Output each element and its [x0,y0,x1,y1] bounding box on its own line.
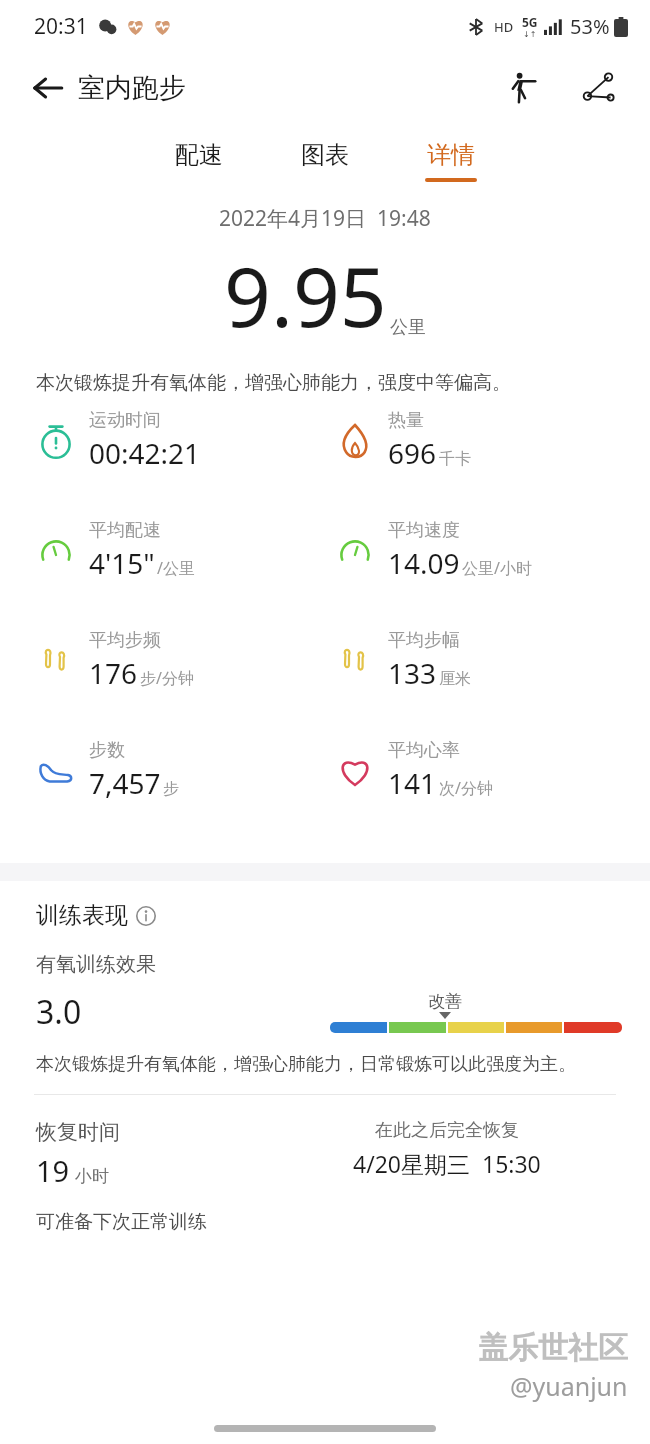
button[interactable]: 详情 [415,134,487,188]
staticText: 详情 [427,140,475,170]
staticText: ↓↑ [523,30,537,39]
staticText: 4/20星期三 15:30 [353,1148,541,1179]
button[interactable]: 图表 [289,134,361,188]
staticText: 133 [388,654,437,692]
button[interactable]: Share [572,61,626,115]
staticText: 20:31 [34,12,88,41]
staticText: 2022年4月19日 19:48 [219,204,431,233]
staticText: 3.0 [36,990,82,1034]
staticText: 次/分钟 [439,777,493,799]
staticText: 训练表现 [36,901,128,930]
staticText: 改善 [428,991,462,1012]
staticText: 公里/小时 [462,557,532,579]
staticText: 平均步幅 [388,629,460,652]
staticText: 公里 [390,316,426,339]
staticText: 141 [388,764,437,802]
staticText: 9.95 [224,239,387,351]
staticText: 本次锻炼提升有氧体能，增强心肺能力，日常锻炼可以此强度为主。 [36,1053,576,1076]
staticText: 小时 [75,1166,109,1187]
staticText: 平均配速 [89,519,161,542]
staticText: 00:42:21 [89,434,201,472]
staticText: 千卡 [439,449,471,469]
staticText: 有氧训练效果 [36,952,156,977]
button[interactable]: 平均速度 [333,519,650,582]
staticText: 步数 [89,739,125,762]
button[interactable]: 热量 [333,409,650,472]
staticText: 5G [522,14,538,30]
staticText: 平均速度 [388,519,460,542]
staticText: @yuanjun [510,1369,628,1403]
staticText: 盖乐世社区 [478,1329,628,1367]
staticText: 图表 [301,140,349,170]
staticText: 室内跑步 [78,71,186,105]
staticText: 176 [89,654,138,692]
staticText: 平均心率 [388,739,460,762]
staticText: 4'15" [89,544,155,582]
button[interactable]: 运动时间 [34,409,325,472]
button[interactable]: Back [22,62,74,114]
button[interactable]: 平均步幅 [333,629,650,692]
staticText: 在此之后完全恢复 [375,1119,519,1142]
button[interactable]: 平均配速 [34,519,325,582]
staticText: 696 [388,434,437,472]
staticText: 步 [163,779,179,799]
button[interactable]: Workout type [496,61,550,115]
button[interactable]: 步数 [34,739,325,802]
staticText: 平均步频 [89,629,161,652]
staticText: 步/分钟 [140,667,194,689]
staticText: 本次锻炼提升有氧体能，增强心肺能力，强度中等偏高。 [36,371,511,395]
staticText: 厘米 [439,669,471,689]
other: Info [136,906,156,926]
staticText: 53% [570,13,610,40]
staticText: /公里 [157,557,195,579]
staticText: 配速 [175,140,223,170]
staticText: 热量 [388,409,424,432]
button[interactable]: 配速 [163,134,235,188]
button[interactable]: 平均心率 [333,739,650,802]
staticText: 恢复时间 [36,1119,120,1145]
staticText: 运动时间 [89,409,161,432]
staticText: 7,457 [89,764,161,802]
staticText: 19 [36,1151,70,1190]
staticText: 14.09 [388,544,460,582]
button[interactable]: 训练表现 [36,901,156,930]
staticText: HD [494,18,514,36]
staticText: 可准备下次正常训练 [36,1210,207,1234]
button[interactable]: 平均步频 [34,629,325,692]
